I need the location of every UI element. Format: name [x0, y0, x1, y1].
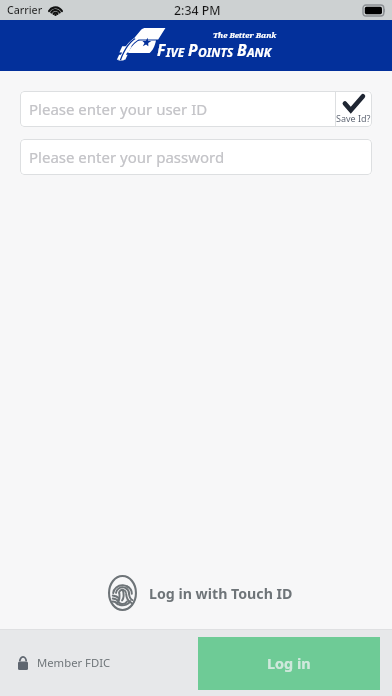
staticText: Log in	[267, 654, 311, 674]
staticText: Member FDIC	[37, 655, 111, 670]
staticText: Please enter your password	[29, 147, 225, 167]
button[interactable]: Log in with Touch ID	[8, 575, 392, 611]
staticText: B	[237, 39, 247, 60]
button[interactable]: Log in	[198, 637, 380, 690]
staticText: Please enter your user ID	[29, 99, 208, 119]
staticText: F	[157, 39, 166, 60]
staticText: IVE	[166, 44, 185, 60]
button[interactable]: Save Id?	[335, 91, 372, 127]
staticText: Save Id?	[336, 112, 371, 124]
staticText: Carrier	[7, 3, 43, 17]
staticText: The Better Bank	[213, 30, 277, 41]
button[interactable]: Please enter your password	[20, 139, 372, 175]
staticText: 2:34 PM	[174, 2, 221, 19]
staticText: Log in with Touch ID	[149, 584, 293, 603]
staticText: P	[188, 39, 198, 60]
staticText: OINTS	[198, 44, 234, 60]
staticText: ANK	[247, 44, 271, 60]
